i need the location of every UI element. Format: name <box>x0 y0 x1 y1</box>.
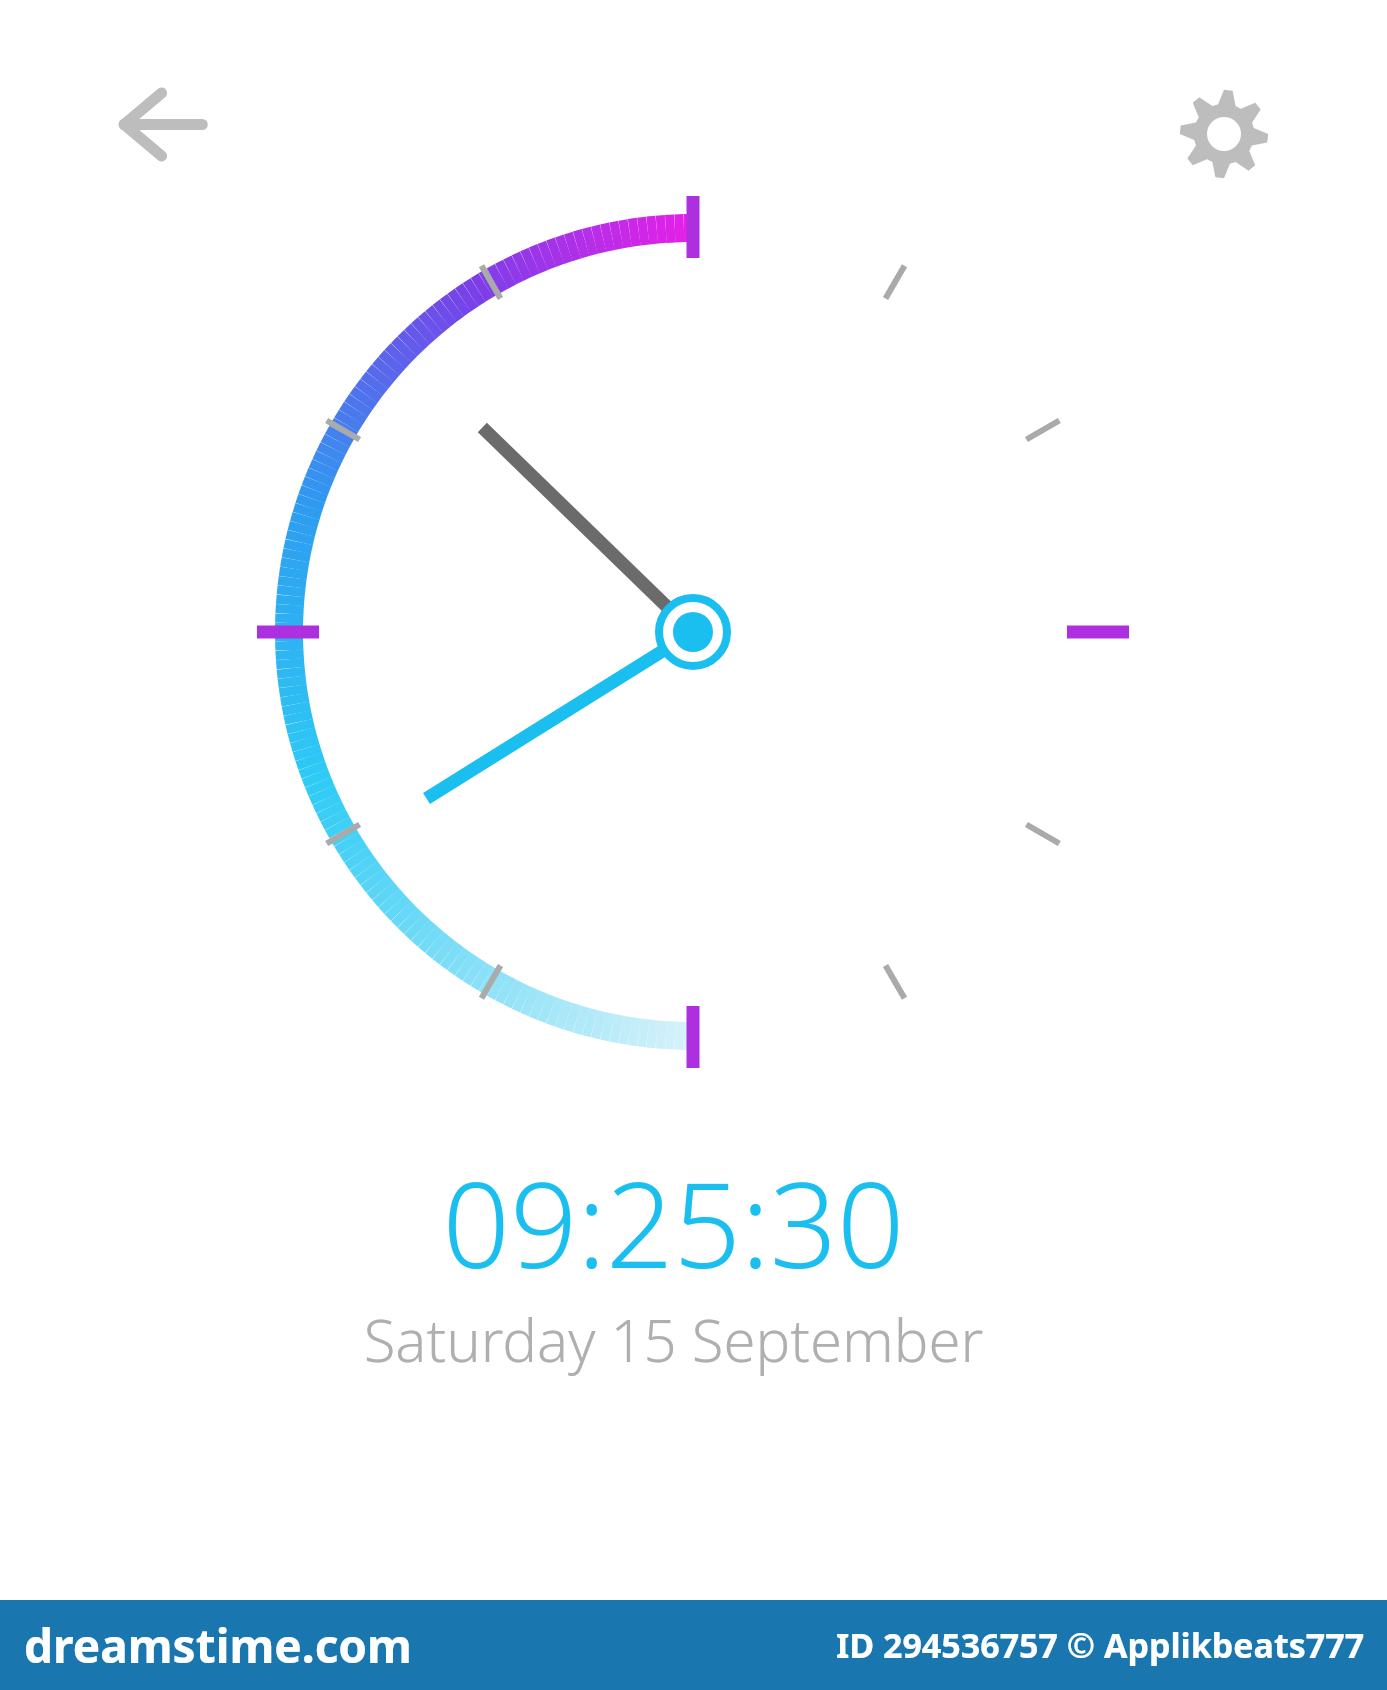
staticText: Saturday 15 September <box>0 1300 1367 1379</box>
button[interactable]: Settings <box>1178 88 1270 180</box>
staticText: ID 294536757 © Applikbeats777 <box>836 1622 1365 1668</box>
staticText: dreamstime.com <box>24 1614 412 1677</box>
staticText: 09:25:30 <box>0 1142 1367 1303</box>
button[interactable]: Back <box>100 72 210 177</box>
